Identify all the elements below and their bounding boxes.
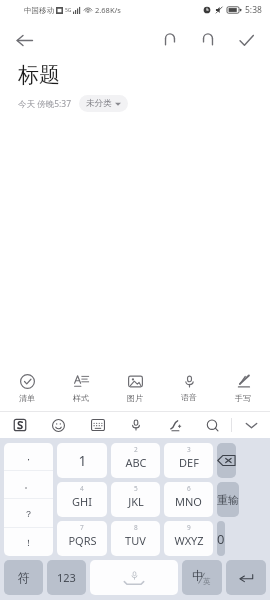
button[interactable]: 3	[164, 443, 213, 478]
staticText: 图片	[127, 393, 143, 403]
button[interactable]: Delete	[217, 443, 236, 478]
staticText: GHI	[72, 494, 92, 509]
button[interactable]: 语音	[162, 365, 216, 411]
button[interactable]: ！	[4, 528, 53, 556]
staticText: ？	[24, 508, 33, 519]
button[interactable]: 符	[4, 560, 43, 595]
button[interactable]: Redo	[192, 24, 224, 56]
button[interactable]: 重输	[217, 482, 239, 517]
button[interactable]: 9	[164, 521, 213, 556]
staticText: 。	[24, 479, 33, 490]
staticText: 8	[134, 523, 138, 532]
staticText: 符	[18, 570, 30, 585]
button[interactable]: 0	[217, 521, 225, 556]
staticText: TUV	[125, 533, 146, 548]
button[interactable]: Back	[8, 24, 40, 56]
button[interactable]: 6	[164, 482, 213, 517]
staticText: 中	[192, 568, 204, 583]
button[interactable]: Search	[193, 412, 231, 438]
staticText: 9	[187, 523, 191, 532]
button[interactable]: ，	[4, 443, 53, 470]
button[interactable]: 1	[57, 443, 107, 478]
button[interactable]: 。	[4, 471, 53, 498]
staticText: 1	[78, 451, 87, 470]
button[interactable]: 未分类	[79, 95, 128, 112]
button[interactable]: 8	[111, 521, 160, 556]
button[interactable]: 中	[182, 560, 222, 595]
button[interactable]: Collapse keyboard	[232, 412, 270, 438]
staticText: 5:38	[245, 4, 262, 16]
button[interactable]: Save	[230, 24, 262, 56]
staticText: 2.68K/s	[95, 5, 121, 15]
staticText: WXYZ	[174, 533, 204, 548]
staticText: 今天 傍晚5:37	[18, 98, 72, 110]
button[interactable]: 2	[111, 443, 160, 478]
staticText: 5G	[65, 7, 72, 14]
staticText: 重输	[217, 493, 239, 507]
staticText: ABC	[125, 455, 147, 470]
button[interactable]: Space	[90, 560, 178, 595]
staticText: 5	[134, 484, 138, 493]
button[interactable]: 图片	[108, 365, 162, 411]
staticText: MNO	[175, 494, 202, 509]
staticText: 手写	[235, 393, 251, 403]
button[interactable]: Enter	[226, 560, 266, 595]
button[interactable]: Undo	[154, 24, 186, 56]
staticText: 0	[217, 530, 225, 548]
button[interactable]: 123	[47, 560, 86, 595]
staticText: 语音	[181, 392, 197, 402]
button[interactable]: Emoji	[39, 412, 78, 438]
button[interactable]: Keyboard	[78, 412, 117, 438]
staticText: 6	[187, 484, 191, 493]
staticText: 未分类	[86, 98, 112, 109]
button[interactable]: ？	[4, 499, 53, 527]
staticText: 123	[57, 570, 76, 585]
button[interactable]: 4	[57, 482, 107, 517]
staticText: 7	[80, 523, 84, 532]
button[interactable]: Handwriting	[155, 412, 193, 438]
button[interactable]: 手写	[216, 365, 270, 411]
button[interactable]: 5	[111, 482, 160, 517]
staticText: DEF	[179, 455, 199, 470]
button[interactable]: 清单	[0, 365, 54, 411]
staticText: 3	[187, 445, 191, 454]
staticText: 中国移动	[24, 6, 54, 15]
staticText: 样式	[73, 393, 89, 403]
button[interactable]: Voice input	[117, 412, 155, 438]
staticText: JKL	[128, 494, 144, 509]
button[interactable]: 7	[57, 521, 107, 556]
staticText: ！	[24, 537, 33, 548]
staticText: 2	[134, 445, 138, 454]
button[interactable]: 样式	[54, 365, 108, 411]
staticText: ，	[24, 451, 33, 462]
staticText: 标题	[18, 62, 60, 88]
staticText: PQRS	[68, 533, 97, 548]
staticText: 清单	[19, 393, 35, 403]
button[interactable]: Sogou input	[0, 412, 39, 438]
staticText: 英	[203, 577, 211, 586]
staticText: 4	[80, 484, 84, 493]
